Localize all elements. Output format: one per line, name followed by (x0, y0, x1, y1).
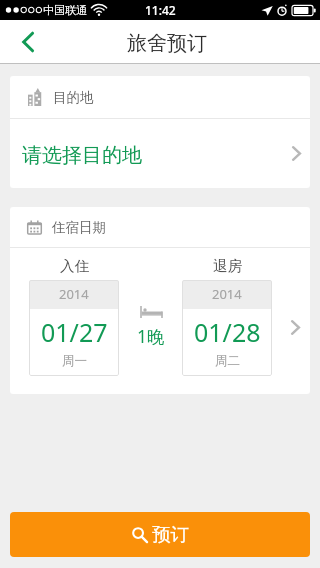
button[interactable]: 预订 (10, 512, 310, 557)
button[interactable]: Back (0, 20, 56, 64)
staticText: 目的地 (53, 89, 94, 106)
staticText: 退房 (213, 257, 242, 275)
button[interactable]: 入住 (10, 248, 310, 394)
staticText: 1晚 (137, 324, 165, 348)
staticText: 住宿日期 (52, 219, 106, 236)
button[interactable]: 请选择目的地 (10, 119, 310, 188)
staticText: 入住 (60, 257, 89, 275)
staticText: 旅舍预订 (127, 31, 207, 56)
staticText: 2014 (59, 285, 89, 303)
staticText: 01/27 (41, 315, 108, 349)
staticText: 2014 (212, 285, 242, 303)
staticText: 中国联通 (43, 3, 87, 17)
staticText: 请选择目的地 (22, 143, 142, 168)
staticText: 01/28 (194, 315, 261, 349)
staticText: 周二 (215, 353, 240, 369)
staticText: 周一 (62, 353, 87, 369)
staticText: 预订 (152, 523, 189, 546)
staticText: 11:42 (145, 2, 176, 18)
